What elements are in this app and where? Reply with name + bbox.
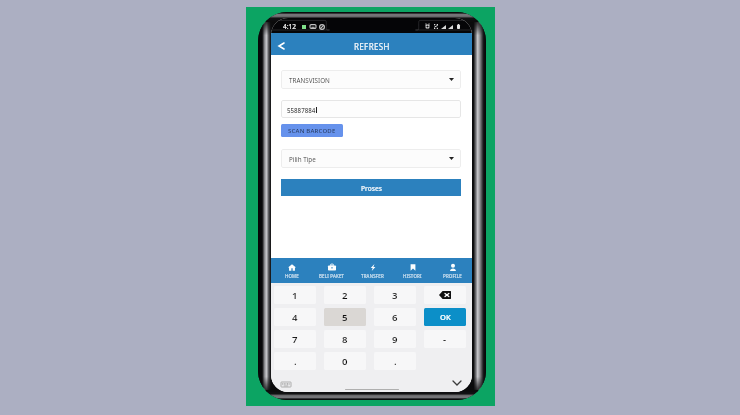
button[interactable]: 8 <box>324 330 366 348</box>
staticText: TRANSVISION <box>289 76 330 85</box>
staticText: REFRESH <box>354 41 390 52</box>
button[interactable]: . <box>374 352 416 370</box>
button[interactable]: - <box>424 330 466 348</box>
staticText: BELI PAKET <box>319 273 345 279</box>
button[interactable]: 0 <box>324 352 366 370</box>
staticText: HOME <box>285 273 299 279</box>
button[interactable]: 5 <box>324 308 366 326</box>
staticText: 9 <box>392 333 398 346</box>
button[interactable]: SCAN BARCODE <box>281 124 343 137</box>
button[interactable]: TRANSFER <box>352 258 392 283</box>
button[interactable]: 7 <box>274 330 316 348</box>
staticText: HISTORI <box>403 273 422 279</box>
button[interactable]: 6 <box>374 308 416 326</box>
staticText: 6 <box>392 311 398 324</box>
staticText: . <box>394 355 397 368</box>
other: Keyboard settings <box>281 382 291 387</box>
staticText: 8 <box>342 333 348 346</box>
staticText: Proses <box>361 184 382 193</box>
staticText: SCAN BARCODE <box>288 127 336 135</box>
button[interactable]: Pilih Tipe <box>281 149 461 168</box>
staticText: 2 <box>342 289 348 302</box>
button[interactable]: 4 <box>274 308 316 326</box>
button[interactable]: 2 <box>324 286 366 304</box>
staticText: PROFILE <box>443 273 462 279</box>
staticText: 55887884 <box>287 106 316 114</box>
staticText: Pilih Tipe <box>289 155 316 164</box>
button[interactable]: Backspace <box>424 286 466 304</box>
button[interactable]: HOME <box>271 258 312 283</box>
button[interactable]: 1 <box>274 286 316 304</box>
staticText: 1 <box>292 289 298 302</box>
button[interactable]: HISTORI <box>392 258 432 283</box>
staticText: 4 <box>292 311 298 324</box>
staticText: . <box>294 355 297 368</box>
staticText: - <box>443 333 447 346</box>
staticText: 5 <box>342 311 348 324</box>
button[interactable]: OK <box>424 308 466 326</box>
button[interactable]: 55887884 <box>281 100 461 118</box>
staticText: 4:12 <box>283 22 297 31</box>
staticText: OK <box>440 312 451 322</box>
button[interactable]: TRANSVISION <box>281 70 461 89</box>
staticText: 3 <box>392 289 398 302</box>
staticText: 7 <box>292 333 298 346</box>
other: Hide keyboard <box>453 381 461 385</box>
button[interactable]: PROFILE <box>432 258 472 283</box>
button[interactable]: 3 <box>374 286 416 304</box>
button[interactable]: Back <box>271 33 295 55</box>
button[interactable]: BELI PAKET <box>312 258 352 283</box>
button[interactable]: Proses <box>281 179 461 196</box>
staticText: 0 <box>342 355 348 368</box>
button[interactable]: 9 <box>374 330 416 348</box>
staticText: TRANSFER <box>361 273 384 279</box>
button[interactable]: . <box>274 352 316 370</box>
